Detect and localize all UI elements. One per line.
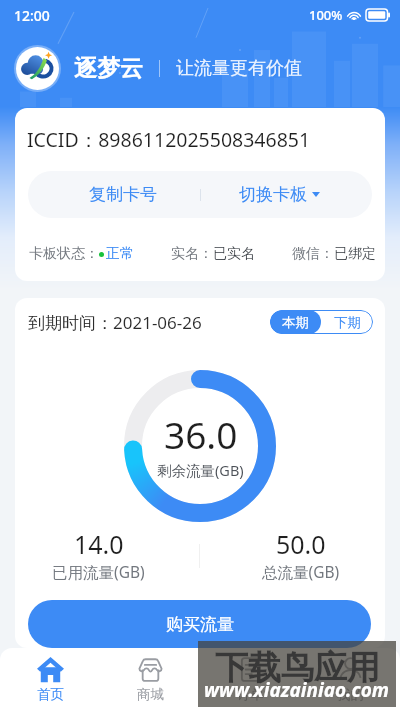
staticText: 下载鸟应用 bbox=[215, 647, 380, 689]
staticText: 100% bbox=[309, 6, 343, 24]
staticText: 已用流量(GB) bbox=[52, 561, 145, 582]
button[interactable]: 下期 bbox=[321, 310, 373, 334]
staticText: 商城 bbox=[137, 686, 164, 703]
staticText: 让流量更有价值 bbox=[176, 57, 302, 80]
button[interactable]: 我的 bbox=[300, 648, 400, 711]
staticText: 到期时间：2021-06-26 bbox=[28, 311, 202, 334]
button[interactable]: 商城 bbox=[100, 648, 200, 711]
staticText: 已实名 bbox=[213, 245, 255, 263]
staticText: 36.0 bbox=[164, 409, 238, 459]
staticText: 购买流量 bbox=[166, 614, 234, 635]
staticText: 剩余流量(GB) bbox=[157, 460, 244, 480]
staticText: 订单 bbox=[237, 686, 264, 703]
button[interactable]: 本期 bbox=[270, 310, 321, 334]
staticText: 正常 bbox=[106, 245, 134, 263]
staticText: 12:00 bbox=[14, 6, 50, 25]
staticText: 微信： bbox=[292, 245, 334, 263]
button[interactable]: 复制卡号 bbox=[28, 171, 200, 218]
button[interactable]: 首页 bbox=[0, 648, 100, 711]
button[interactable]: 购买流量 bbox=[28, 600, 371, 648]
staticText: 总流量(GB) bbox=[262, 561, 340, 582]
button[interactable]: 切换卡板 bbox=[200, 171, 372, 218]
staticText: 首页 bbox=[37, 686, 64, 703]
staticText: 实名： bbox=[171, 245, 213, 263]
staticText: www.xiazainiao.com bbox=[204, 677, 390, 703]
staticText: ICCID：8986112025508346851 bbox=[27, 126, 311, 153]
staticText: 逐梦云 bbox=[74, 54, 143, 83]
staticText: 下期 bbox=[334, 314, 361, 331]
staticText: 切换卡板 bbox=[239, 184, 307, 205]
staticText: 卡板状态： bbox=[29, 245, 99, 263]
staticText: 已绑定 bbox=[334, 245, 376, 263]
staticText: 14.0 bbox=[74, 527, 124, 561]
staticText: 复制卡号 bbox=[89, 184, 157, 205]
button[interactable]: 订单 bbox=[200, 648, 300, 711]
staticText: 我的 bbox=[337, 686, 364, 703]
staticText: 50.0 bbox=[276, 527, 326, 561]
staticText: 本期 bbox=[282, 314, 309, 331]
